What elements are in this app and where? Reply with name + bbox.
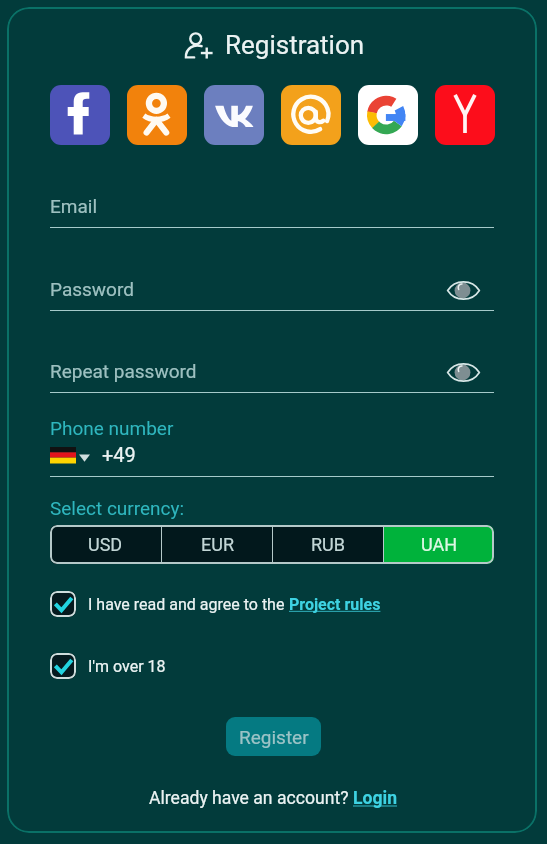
staticText: Login [353,788,398,809]
button[interactable]: Sign in with Google [358,85,418,145]
button[interactable]: Sign in with Facebook [50,85,110,145]
staticText: Select currency: [50,497,185,519]
button[interactable]: Login [353,788,398,809]
button[interactable]: Show password [447,272,483,308]
button[interactable]: Register [226,717,321,756]
button[interactable]: Toggle checkbox [50,653,76,679]
staticText: Repeat password [50,360,197,382]
staticText: RUB [311,534,345,555]
staticText: +49 [102,443,136,466]
button[interactable]: Project rules [289,595,381,614]
button[interactable]: Select country code [50,447,90,463]
staticText: EUR [201,534,234,555]
button[interactable]: RUB [273,525,383,564]
staticText: Register [239,726,309,748]
button[interactable]: UAH [384,525,494,564]
staticText: I'm over 18 [88,657,166,676]
staticText: Password [50,278,134,300]
button[interactable]: Show password [447,354,483,390]
staticText: UAH [421,534,458,555]
button[interactable]: Sign in with Yandex [435,85,495,145]
staticText: USD [88,534,123,555]
button[interactable]: USD [50,525,161,564]
staticText: Already have an account? [149,788,353,809]
staticText: Email [50,195,98,217]
button[interactable]: Sign in with VK [204,85,264,145]
staticText: I have read and agree to the [88,595,289,614]
button[interactable]: Toggle checkbox [50,591,76,617]
button[interactable]: Sign in with Mail.ru [281,85,341,145]
staticText: Project rules [289,595,381,614]
staticText: Registration [225,30,365,60]
staticText: Phone number [50,417,174,439]
button[interactable]: Sign in with Odnoklassniki [127,85,187,145]
button[interactable]: EUR [162,525,272,564]
